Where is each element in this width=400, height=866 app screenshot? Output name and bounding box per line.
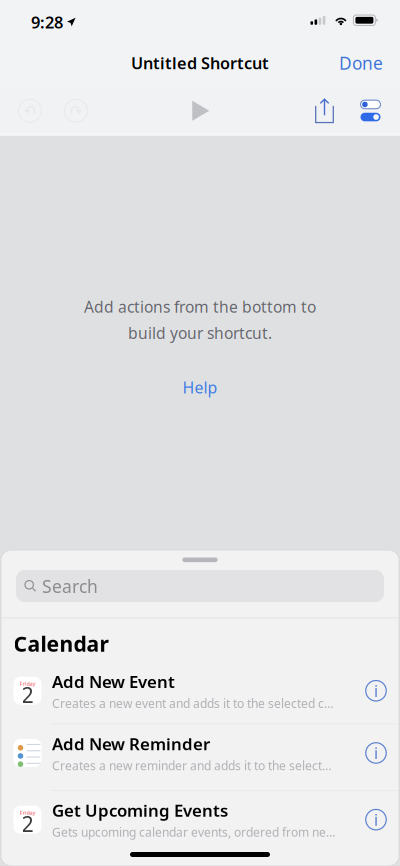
staticText: i — [374, 742, 378, 763]
button[interactable]: Friday — [1, 665, 399, 723]
staticText: Calendar — [14, 629, 109, 658]
staticText: Friday — [19, 680, 35, 687]
staticText: 2 — [21, 809, 33, 838]
staticText: Search — [42, 574, 98, 598]
button[interactable]: Shortcut settings — [352, 92, 388, 130]
staticText: Creates a new event and adds it to the s… — [52, 695, 334, 711]
staticText: Done — [339, 51, 383, 75]
button[interactable]: Help — [166, 369, 233, 405]
staticText: 2 — [21, 681, 33, 709]
button[interactable]: Friday — [1, 791, 399, 857]
staticText: Get Upcoming Events — [52, 799, 228, 822]
staticText: Add New Event — [52, 670, 175, 693]
staticText: Help — [182, 376, 217, 398]
button[interactable]: Add New Reminder — [1, 724, 399, 790]
staticText: Add New Reminder — [52, 732, 210, 755]
staticText: i — [374, 809, 378, 830]
staticText: Untitled Shortcut — [131, 52, 269, 74]
button[interactable]: Done — [322, 41, 400, 85]
button[interactable]: Search — [1, 570, 399, 602]
staticText: 9:28 — [31, 11, 63, 33]
staticText: Friday — [19, 809, 35, 816]
button[interactable]: Run shortcut — [182, 92, 220, 130]
staticText: build your shortcut. — [128, 322, 272, 343]
button[interactable]: Share — [306, 92, 342, 130]
staticText: Gets upcoming calendar events, ordered f… — [52, 824, 336, 840]
staticText: Creates a new reminder and adds it to th… — [52, 757, 332, 774]
staticText: i — [374, 680, 378, 701]
staticText: Add actions from the bottom to — [84, 296, 316, 317]
